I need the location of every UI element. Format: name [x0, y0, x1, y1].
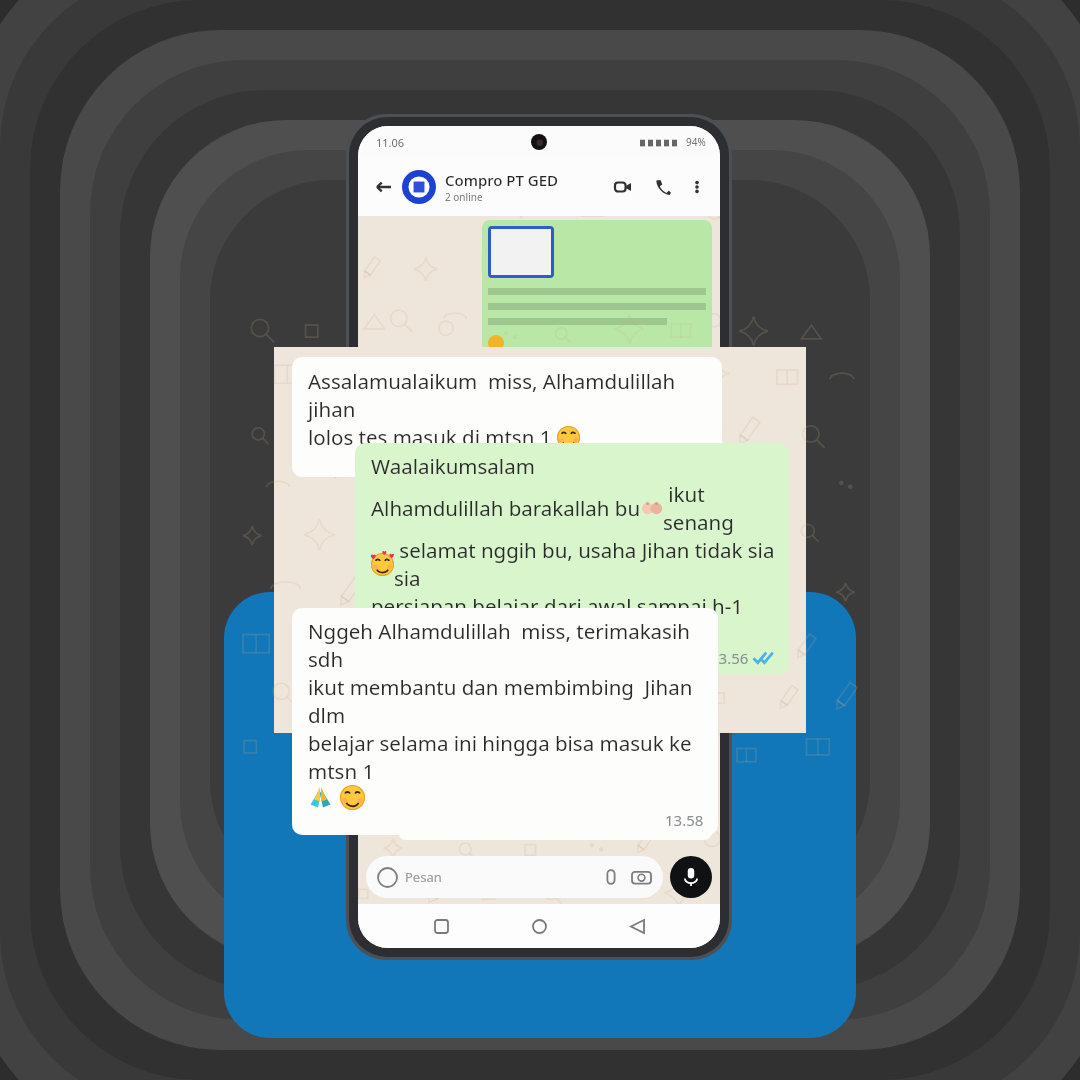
button[interactable]: Pesan	[366, 856, 663, 898]
button[interactable]: More options	[684, 174, 710, 200]
staticText: lolos tes masuk di mtsn 1	[308, 423, 557, 451]
staticText: MAY PRIVATE	[358, 575, 723, 649]
staticText: Waalaikumsalam	[371, 452, 535, 480]
staticText: 94%	[686, 135, 706, 149]
button[interactable]	[482, 220, 712, 372]
staticText: 11.06	[376, 135, 405, 150]
staticText: persiapan belajar dari awal sampai h-1 t…	[371, 592, 775, 648]
button[interactable]: Call	[648, 172, 678, 202]
button[interactable]: Video call	[608, 172, 638, 202]
button[interactable]: Voice message	[670, 856, 712, 898]
button[interactable]: Back	[368, 172, 398, 202]
staticText: 2 online	[445, 190, 483, 204]
button[interactable]: Back	[358, 158, 720, 216]
staticText: Alhamdulillah barakallah bu	[371, 494, 641, 522]
staticText: Nggeh Alhamdulillah miss, terimakasih sd…	[308, 617, 704, 673]
button[interactable]: Camera	[632, 868, 651, 887]
button[interactable]: Back	[622, 911, 652, 941]
button[interactable]: Recents	[426, 911, 456, 941]
staticText: 13.58	[665, 810, 704, 830]
staticText: selamat nggih bu, usaha Jihan tidak sia …	[394, 536, 775, 592]
staticText: Pesan	[405, 868, 442, 886]
button[interactable]: Assalamualaikum miss, Alhamdulillah jiha…	[292, 357, 722, 477]
staticText: C O U R S E	[452, 649, 628, 695]
staticText: 13.56	[710, 648, 753, 668]
button[interactable]	[398, 753, 712, 840]
button[interactable]: Waalaikumsalam	[355, 443, 789, 674]
button[interactable]: Attach	[602, 868, 620, 886]
staticText: belajar selama ini hingga bisa masuk ke …	[308, 729, 704, 785]
staticText: ikut membantu dan membimbing Jihan dlm	[308, 673, 704, 729]
button[interactable]	[482, 723, 712, 745]
staticText: Compro PT GED	[445, 170, 559, 190]
staticText: ikut senang	[663, 480, 775, 536]
button[interactable]: Home	[524, 911, 554, 941]
button[interactable]: Nggeh Alhamdulillah miss, terimakasih sd…	[292, 608, 718, 835]
staticText: Assalamualaikum miss, Alhamdulillah jiha…	[308, 367, 708, 423]
